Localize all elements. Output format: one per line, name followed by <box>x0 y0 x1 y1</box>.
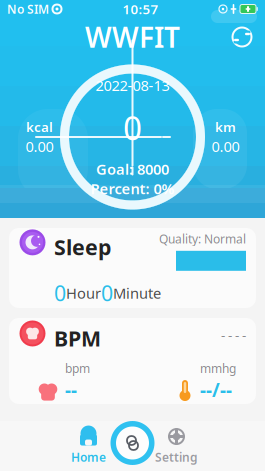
staticText: BPM <box>54 324 101 352</box>
staticText: Minute <box>113 283 161 303</box>
staticText: bpm <box>65 360 90 376</box>
staticText: mmhg <box>200 360 236 376</box>
staticText: Home <box>71 449 106 465</box>
button[interactable]: Setting <box>132 421 220 471</box>
staticText: 0 <box>123 105 142 149</box>
button[interactable]: BPM <box>9 318 256 404</box>
staticText: No SIM <box>7 1 49 17</box>
staticText: - - - - <box>221 326 246 344</box>
staticText: 10:57 <box>122 0 158 18</box>
staticText: -- <box>65 377 77 402</box>
button[interactable]: Home <box>44 421 132 471</box>
staticText: km <box>215 118 236 136</box>
button[interactable]: Connect device <box>108 419 156 467</box>
staticText: kcal <box>26 118 53 136</box>
staticText: 0.00 <box>25 137 53 156</box>
staticText: Percent: 0% <box>90 179 174 198</box>
staticText: 2022-08-13 <box>95 76 169 95</box>
staticText: Hour <box>66 283 101 303</box>
staticText: Goal: 8000 <box>96 159 169 179</box>
staticText: Sleep <box>54 233 111 261</box>
staticText: WWFIT <box>85 18 180 56</box>
button[interactable]: Refresh <box>225 20 259 54</box>
staticText: Setting <box>155 449 198 465</box>
staticText: --/-- <box>200 377 232 402</box>
button[interactable]: Sleep <box>9 228 256 308</box>
staticText: Quality: Normal <box>159 231 246 247</box>
staticText: 0 <box>101 279 113 307</box>
staticText: 0 <box>54 279 66 307</box>
staticText: 0.00 <box>211 137 239 156</box>
